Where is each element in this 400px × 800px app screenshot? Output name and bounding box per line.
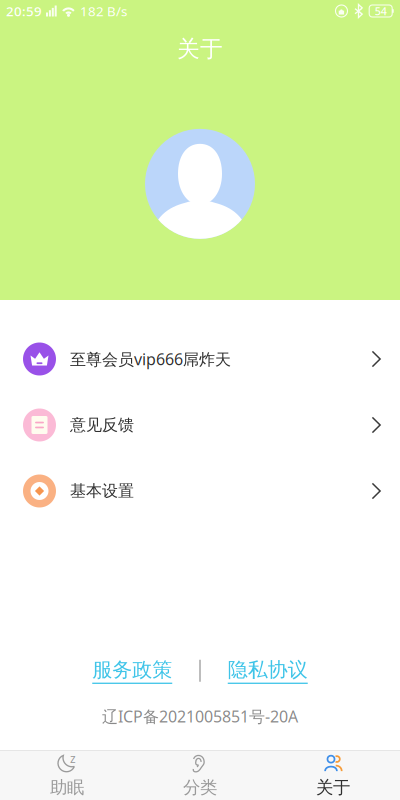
- staticText: 182 B/s: [80, 2, 127, 20]
- staticText: 20:59: [6, 2, 42, 20]
- staticText: 基本设置: [70, 481, 134, 501]
- staticText: 关于: [316, 777, 350, 798]
- staticText: 服务政策: [92, 658, 172, 682]
- button[interactable]: 分类: [133, 750, 266, 800]
- staticText: 隐私协议: [228, 658, 308, 682]
- button[interactable]: 隐私协议: [228, 658, 308, 684]
- staticText: z: [70, 750, 76, 766]
- button[interactable]: z: [0, 750, 133, 800]
- staticText: 辽ICP备2021005851号-20A: [102, 706, 298, 727]
- staticText: 关于: [177, 35, 223, 63]
- staticText: 54: [375, 4, 387, 18]
- button[interactable]: 意见反馈: [0, 392, 400, 458]
- staticText: 至尊会员vip666屌炸天: [70, 348, 231, 370]
- button[interactable]: 服务政策: [92, 658, 172, 684]
- staticText: 助眠: [50, 777, 84, 798]
- button[interactable]: 基本设置: [0, 458, 400, 524]
- staticText: 意见反馈: [70, 415, 134, 435]
- staticText: 分类: [183, 777, 217, 798]
- button[interactable]: 至尊会员vip666屌炸天: [0, 326, 400, 392]
- button[interactable]: 关于: [266, 750, 399, 800]
